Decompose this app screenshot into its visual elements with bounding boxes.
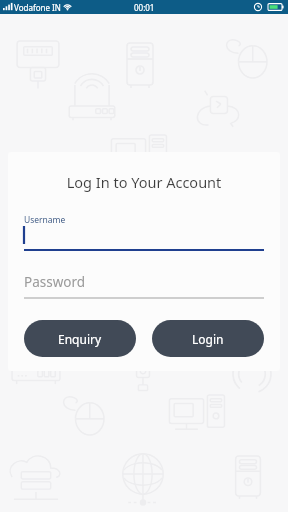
staticText: Vodafone IN [14,2,61,13]
button[interactable]: Login [152,320,264,357]
staticText: Enquiry [58,331,102,347]
button[interactable]: Enquiry [24,320,136,357]
staticText: Log In to Your Account [24,172,264,192]
staticText: Username [24,214,66,226]
button[interactable]: Password [24,273,264,299]
button[interactable] [24,226,264,252]
staticText: Login [192,331,224,347]
staticText: Password [24,273,86,291]
staticText: 00:01 [134,2,155,13]
